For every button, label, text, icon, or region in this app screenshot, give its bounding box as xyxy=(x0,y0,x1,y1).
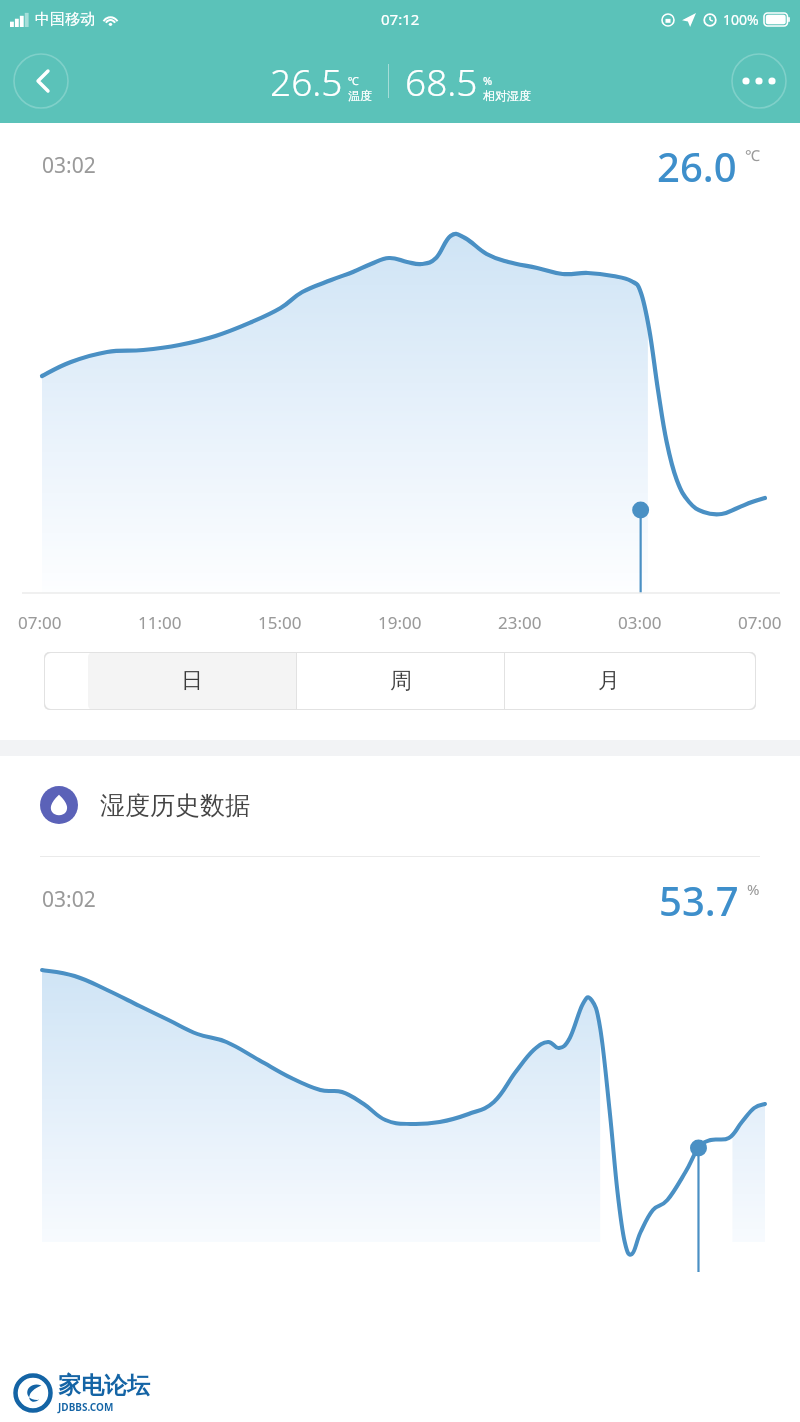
staticText: JDBBS.COM xyxy=(58,1400,114,1414)
staticText: 15:00 xyxy=(258,611,302,634)
button[interactable]: 周 xyxy=(297,652,504,710)
staticText: 100% xyxy=(723,10,759,29)
staticText: 家电论坛 xyxy=(58,1371,150,1400)
staticText: 相对湿度 xyxy=(483,88,531,103)
staticText: ℃ xyxy=(745,145,760,165)
staticText: 19:00 xyxy=(378,611,422,634)
button[interactable]: Back xyxy=(12,52,70,110)
staticText: 26.0 xyxy=(657,139,737,193)
staticText: 23:00 xyxy=(498,611,542,634)
staticText: 11:00 xyxy=(138,611,182,634)
staticText: % xyxy=(483,73,493,88)
staticText: 03:02 xyxy=(42,885,96,914)
staticText: 26.5 xyxy=(270,56,343,106)
staticText: 07:12 xyxy=(381,9,420,29)
staticText: 中国移动 xyxy=(35,10,95,29)
button[interactable]: More options xyxy=(730,52,788,110)
staticText: % xyxy=(747,879,760,899)
staticText: 53.7 xyxy=(659,873,739,927)
staticText: 68.5 xyxy=(405,56,478,106)
staticText: 月 xyxy=(598,667,620,695)
staticText: 07:00 xyxy=(738,611,782,634)
staticText: 周 xyxy=(390,667,412,695)
staticText: 07:00 xyxy=(18,611,62,634)
button[interactable]: 月 xyxy=(505,652,712,710)
staticText: 03:02 xyxy=(42,151,96,180)
staticText: 03:00 xyxy=(618,611,662,634)
staticText: 日 xyxy=(181,667,203,695)
staticText: ℃ xyxy=(348,73,359,88)
button[interactable]: 日 xyxy=(88,652,296,710)
staticText: 温度 xyxy=(348,88,372,103)
staticText: 湿度历史数据 xyxy=(100,790,250,821)
